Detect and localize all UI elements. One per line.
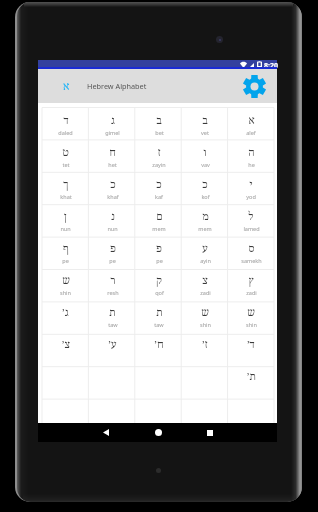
staticText: ת׳ [247, 371, 256, 383]
button[interactable]: י [228, 172, 274, 204]
staticText: ש [62, 275, 70, 287]
button[interactable]: Settings [238, 69, 270, 103]
staticText: nun [107, 225, 118, 232]
staticText: מ [202, 211, 209, 223]
button[interactable] [89, 396, 136, 423]
staticText: א [248, 115, 255, 127]
button[interactable]: ח׳ [136, 332, 182, 364]
staticText: כ [156, 179, 162, 191]
button[interactable] [89, 364, 136, 396]
button[interactable]: ש [182, 300, 228, 332]
staticText: ז׳ [202, 339, 208, 351]
button[interactable]: ד [42, 108, 89, 140]
staticText: alef [246, 129, 256, 136]
staticText: ת [109, 307, 116, 319]
button[interactable]: פ [136, 236, 182, 268]
button[interactable]: ב [182, 108, 228, 140]
button[interactable]: ט [42, 140, 89, 172]
staticText: ש [247, 307, 255, 319]
button[interactable]: Recent apps [184, 423, 236, 442]
staticText: pe [62, 257, 69, 264]
button[interactable]: צ׳ [42, 332, 89, 364]
button[interactable]: צ [182, 268, 228, 300]
staticText: zadi [246, 289, 257, 296]
button[interactable]: Hebrew Alphabet app icon [50, 69, 82, 103]
staticText: פ [110, 243, 116, 255]
button[interactable]: ד׳ [228, 332, 274, 364]
staticText: ו [203, 147, 207, 159]
button[interactable] [136, 396, 182, 423]
button[interactable] [136, 364, 182, 396]
staticText: Hebrew Alphabet [87, 81, 147, 91]
button[interactable]: ג׳ [42, 300, 89, 332]
button[interactable]: ח [89, 140, 136, 172]
staticText: tet [62, 161, 70, 168]
button[interactable]: ב [136, 108, 182, 140]
staticText: ב [202, 115, 208, 127]
button[interactable]: ק [136, 268, 182, 300]
staticText: ד [63, 115, 69, 127]
staticText: ט [62, 147, 69, 159]
button[interactable]: ע [182, 236, 228, 268]
button[interactable]: ע׳ [89, 332, 136, 364]
button[interactable]: ת [136, 300, 182, 332]
button[interactable]: ס [228, 236, 274, 268]
staticText: ע׳ [108, 339, 117, 351]
button[interactable] [182, 364, 228, 396]
staticText: ן [64, 211, 67, 223]
button[interactable]: Home [132, 423, 184, 442]
button[interactable]: כ [89, 172, 136, 204]
button[interactable]: ו [182, 140, 228, 172]
button[interactable]: ץ [228, 268, 274, 300]
staticText: gimel [105, 129, 120, 136]
button[interactable] [182, 396, 228, 423]
button[interactable]: ה [228, 140, 274, 172]
button[interactable]: ת׳ [228, 364, 274, 396]
staticText: kof [201, 193, 210, 200]
button[interactable]: ש [228, 300, 274, 332]
staticText: pe [109, 257, 116, 264]
button[interactable]: ז [136, 140, 182, 172]
button[interactable]: Back [80, 423, 132, 442]
staticText: ה [248, 147, 255, 159]
button[interactable]: כ [136, 172, 182, 204]
staticText: pe [156, 257, 163, 264]
staticText: ח׳ [154, 339, 164, 351]
staticText: vet [201, 129, 209, 136]
staticText: taw [154, 321, 164, 328]
button[interactable]: ף [42, 236, 89, 268]
staticText: א [63, 80, 70, 93]
button[interactable]: פ [89, 236, 136, 268]
staticText: ח [109, 147, 116, 159]
button[interactable]: ן [42, 204, 89, 236]
button[interactable]: ז׳ [182, 332, 228, 364]
staticText: het [108, 161, 117, 168]
button[interactable]: ר [89, 268, 136, 300]
staticText: yod [246, 193, 256, 200]
button[interactable]: ש [42, 268, 89, 300]
staticText: נ [111, 211, 115, 223]
button[interactable]: א [228, 108, 274, 140]
button[interactable]: כ [182, 172, 228, 204]
staticText: ג [111, 115, 115, 127]
staticText: ayin [200, 257, 211, 264]
button[interactable]: ג [89, 108, 136, 140]
staticText: ל [248, 211, 254, 223]
staticText: ע [202, 243, 208, 255]
staticText: פ [156, 243, 162, 255]
button[interactable] [42, 396, 89, 423]
staticText: shin [60, 289, 71, 296]
staticText: ק [156, 275, 162, 287]
button[interactable]: ת [89, 300, 136, 332]
staticText: ג׳ [62, 307, 69, 319]
button[interactable]: נ [89, 204, 136, 236]
staticText: ף [63, 243, 69, 255]
button[interactable]: מ [182, 204, 228, 236]
staticText: he [248, 161, 255, 168]
staticText: qof [155, 289, 164, 296]
button[interactable]: ל [228, 204, 274, 236]
button[interactable]: ך [42, 172, 89, 204]
button[interactable] [42, 364, 89, 396]
button[interactable]: ם [136, 204, 182, 236]
